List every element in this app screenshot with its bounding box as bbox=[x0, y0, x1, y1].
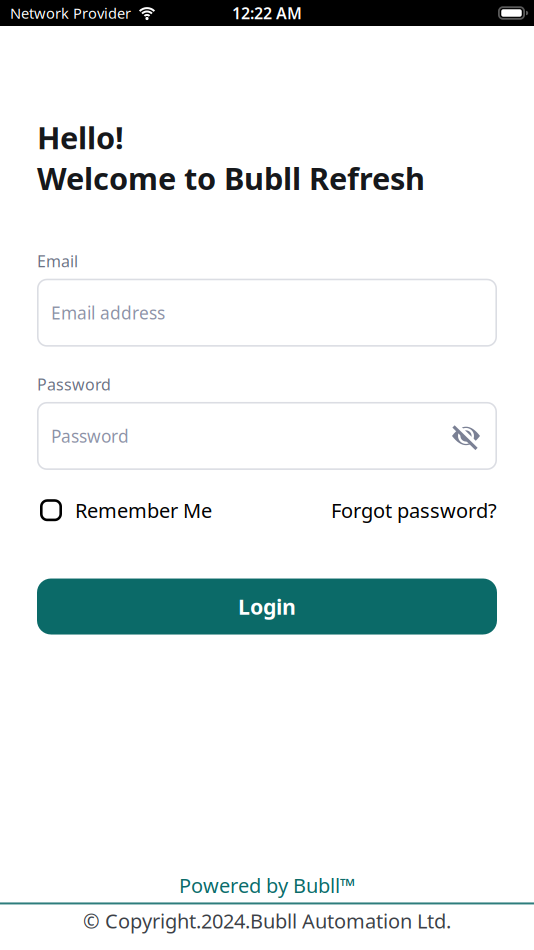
staticText: Network Provider bbox=[10, 3, 131, 23]
button[interactable]: Remember Me bbox=[37, 497, 212, 523]
staticText: Email bbox=[37, 250, 78, 272]
staticText: Remember Me bbox=[75, 497, 212, 523]
staticText: Hello! bbox=[37, 117, 124, 158]
button[interactable]: Powered by Bubll™ bbox=[179, 872, 355, 898]
staticText: 12:22 AM bbox=[232, 2, 302, 24]
staticText: Welcome to Bubll Refresh bbox=[37, 158, 425, 198]
button[interactable]: Show password bbox=[449, 419, 483, 453]
staticText: Email address bbox=[51, 301, 165, 324]
staticText: Forgot password? bbox=[331, 497, 497, 523]
staticText: Login bbox=[238, 592, 296, 621]
staticText: Powered by Bubll™ bbox=[179, 872, 355, 898]
staticText: © Copyright.2024.Bubll Automation Ltd. bbox=[83, 907, 451, 934]
staticText: Password bbox=[51, 424, 129, 447]
button[interactable]: Forgot password? bbox=[331, 497, 497, 523]
staticText: Password bbox=[37, 374, 111, 395]
button[interactable]: Login bbox=[37, 578, 497, 634]
